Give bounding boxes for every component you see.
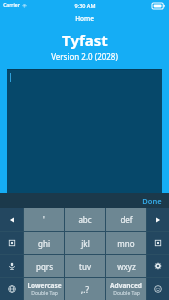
button[interactable]: Move cursor left xyxy=(0,208,23,231)
staticText: Carrier xyxy=(3,2,20,9)
button[interactable]: jkl xyxy=(65,232,105,254)
staticText: Advanced xyxy=(110,281,142,290)
staticText: pqrs xyxy=(36,261,53,272)
staticText: Lowercase xyxy=(27,281,62,290)
button[interactable]: ' xyxy=(24,208,64,231)
staticText: Version 2.0 (2028) xyxy=(51,51,118,62)
button[interactable]: abc xyxy=(65,208,105,231)
staticText: ghi xyxy=(38,238,50,249)
staticText: tuv xyxy=(79,261,91,272)
button[interactable]: pqrs xyxy=(24,255,64,277)
button[interactable]: Done xyxy=(135,194,169,208)
button[interactable]: tuv xyxy=(65,255,105,277)
staticText: def xyxy=(120,214,133,225)
staticText: Done xyxy=(142,196,162,206)
staticText: jkl xyxy=(81,238,90,249)
staticText: 9:30 AM xyxy=(74,2,96,9)
staticText: ' xyxy=(43,214,45,225)
staticText: mno xyxy=(117,238,135,249)
button[interactable]: Emoji xyxy=(147,278,169,300)
button[interactable]: Move cursor right xyxy=(147,208,169,231)
button[interactable]: ghi xyxy=(24,232,64,254)
button[interactable]: wxyz xyxy=(106,255,146,277)
button[interactable]: mno xyxy=(106,232,146,254)
button[interactable]: Voice input xyxy=(0,255,23,277)
staticText: abc xyxy=(78,214,92,225)
staticText: Double Tap xyxy=(113,290,140,297)
button[interactable]: Advanced xyxy=(106,278,146,300)
staticText: Tyfast xyxy=(62,30,108,50)
button[interactable]: Select text xyxy=(0,232,23,254)
staticText: wxyz xyxy=(117,261,136,272)
button[interactable]: ,.? xyxy=(65,278,105,300)
button[interactable]: Select all xyxy=(147,232,169,254)
staticText: ,.? xyxy=(81,284,89,295)
button[interactable]: Settings xyxy=(147,255,169,277)
staticText: Double Tap xyxy=(31,290,58,297)
button[interactable]: Lowercase xyxy=(24,278,64,300)
button[interactable]: def xyxy=(106,208,146,231)
staticText: Home xyxy=(75,14,94,23)
button[interactable]: Change language xyxy=(0,278,23,300)
